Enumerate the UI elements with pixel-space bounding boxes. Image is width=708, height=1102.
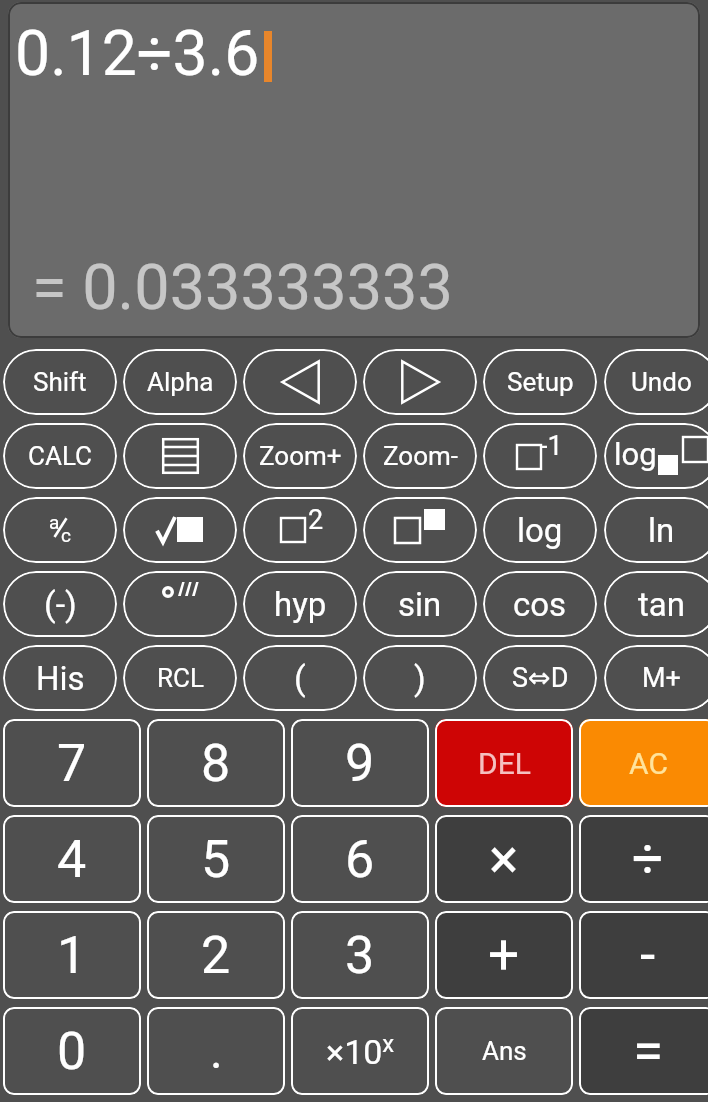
button[interactable]: 9 <box>291 719 429 807</box>
staticText: ÷ <box>632 827 664 891</box>
staticText: c <box>61 524 71 546</box>
staticText: 0.12÷3.6 <box>15 17 260 90</box>
button[interactable]: 0 <box>3 1007 141 1095</box>
staticText: 1 <box>57 925 87 986</box>
button[interactable]: Right <box>363 349 477 415</box>
staticText: 9 <box>345 733 375 794</box>
staticText: Shift <box>33 367 87 397</box>
button[interactable]: 8 <box>147 719 285 807</box>
button[interactable]: cos <box>483 571 597 637</box>
button[interactable]: . <box>147 1007 285 1095</box>
button[interactable]: + <box>435 911 573 999</box>
staticText: + <box>488 923 520 987</box>
button[interactable]: 5 <box>147 815 285 903</box>
button[interactable]: S to D <box>483 645 597 711</box>
staticText: 2 <box>308 504 324 536</box>
staticText: log <box>614 436 657 472</box>
staticText: = <box>633 1019 664 1083</box>
staticText: × <box>489 827 519 891</box>
button[interactable]: Open bracket <box>243 645 357 711</box>
button[interactable]: 1 <box>3 911 141 999</box>
staticText: 4 <box>57 829 87 890</box>
staticText: = 0.033333333 <box>32 251 453 325</box>
button[interactable]: M plus <box>604 645 708 711</box>
staticText: Setup <box>507 367 574 397</box>
button[interactable]: CALC <box>3 423 117 489</box>
button[interactable]: ln <box>604 497 708 563</box>
button[interactable]: log <box>483 497 597 563</box>
staticText: 3 <box>345 925 375 986</box>
button[interactable]: × <box>435 815 573 903</box>
staticText: His <box>36 659 85 698</box>
button[interactable]: 7 <box>3 719 141 807</box>
staticText: DEL <box>478 746 531 781</box>
button[interactable]: Setup <box>483 349 597 415</box>
staticText: S⇔D <box>512 662 569 694</box>
button[interactable]: Square <box>243 497 357 563</box>
button[interactable]: sin <box>363 571 477 637</box>
staticText: 6 <box>345 829 375 890</box>
button[interactable]: Fraction <box>3 497 117 563</box>
staticText: Alpha <box>147 367 214 397</box>
button[interactable]: RCL <box>123 645 237 711</box>
button[interactable]: Shift <box>3 349 117 415</box>
staticText: 2 <box>201 925 231 986</box>
staticText: AC <box>629 746 668 781</box>
button[interactable]: - <box>579 911 708 999</box>
staticText: Zoom+ <box>259 441 342 471</box>
staticText: hyp <box>274 585 327 624</box>
button[interactable]: DEL <box>435 719 573 807</box>
button[interactable]: 3 <box>291 911 429 999</box>
staticText: a <box>49 511 60 533</box>
staticText: sin <box>398 585 442 624</box>
button[interactable]: 6 <box>291 815 429 903</box>
button[interactable]: Negative <box>3 571 117 637</box>
staticText: ( <box>294 658 306 698</box>
button[interactable]: Left <box>243 349 357 415</box>
staticText: cos <box>513 585 567 624</box>
staticText: M+ <box>642 662 681 694</box>
staticText: 0 <box>57 1021 87 1082</box>
button[interactable]: History <box>3 645 117 711</box>
button[interactable]: Log base <box>604 423 708 489</box>
button[interactable]: Square root <box>123 497 237 563</box>
button[interactable]: Power <box>363 497 477 563</box>
button[interactable]: tan <box>604 571 708 637</box>
staticText: CALC <box>28 441 92 471</box>
button[interactable]: hyp <box>243 571 357 637</box>
button[interactable]: Alpha <box>123 349 237 415</box>
button[interactable]: Inverse <box>483 423 597 489</box>
button[interactable]: ×10x <box>291 1007 429 1095</box>
staticText: tan <box>638 585 685 624</box>
staticText: 7 <box>57 733 87 794</box>
staticText: - <box>640 923 656 987</box>
button[interactable]: Zoom out <box>363 423 477 489</box>
staticText: ln <box>648 511 675 550</box>
staticText: Ans <box>482 1036 527 1066</box>
staticText: Undo <box>631 367 692 397</box>
button[interactable]: AC <box>579 719 708 807</box>
staticText: log <box>517 511 563 550</box>
staticText: ) <box>414 658 426 698</box>
button[interactable]: = <box>579 1007 708 1095</box>
staticText: -1 <box>540 430 563 462</box>
button[interactable]: ÷ <box>579 815 708 903</box>
button[interactable]: 2 <box>147 911 285 999</box>
staticText: ×10x <box>326 1030 395 1072</box>
button[interactable]: Table <box>123 423 237 489</box>
staticText: 5 <box>201 829 231 890</box>
staticText: Zoom- <box>383 441 458 471</box>
staticText: . <box>210 1023 223 1079</box>
button[interactable]: Close bracket <box>363 645 477 711</box>
staticText: (-) <box>44 584 77 624</box>
button[interactable]: Ans <box>435 1007 573 1095</box>
button[interactable]: Degrees minutes seconds <box>123 571 237 637</box>
button[interactable]: Undo <box>604 349 708 415</box>
button[interactable]: 4 <box>3 815 141 903</box>
staticText: RCL <box>157 663 204 693</box>
staticText: 8 <box>201 733 231 794</box>
button[interactable]: Zoom in <box>243 423 357 489</box>
